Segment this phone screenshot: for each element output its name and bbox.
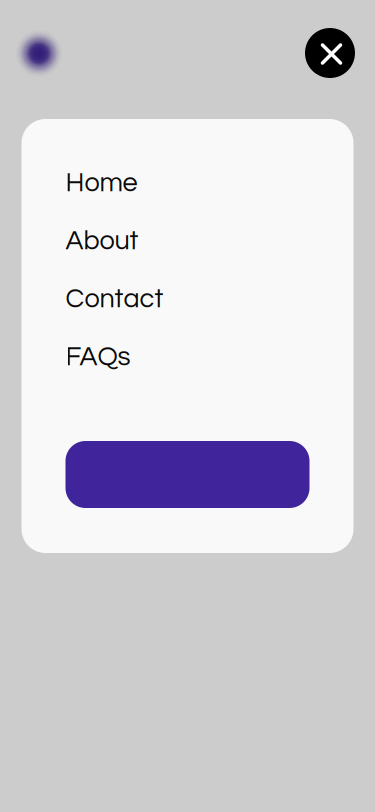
button[interactable]: FAQs — [65, 340, 309, 374]
staticText: FAQs — [65, 343, 130, 371]
staticText: Home — [65, 169, 137, 197]
button[interactable]: About — [65, 224, 309, 258]
button[interactable]: Get started — [65, 441, 309, 508]
button[interactable]: Home — [65, 166, 309, 200]
staticText: Contact — [65, 285, 163, 313]
staticText: About — [65, 227, 138, 255]
button[interactable]: Contact — [65, 282, 309, 316]
button[interactable]: Close menu — [305, 28, 355, 78]
